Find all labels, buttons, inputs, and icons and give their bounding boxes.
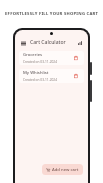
button[interactable]: My Whishlist	[19, 69, 84, 83]
button[interactable]: Delete cart	[72, 54, 80, 62]
button[interactable]: Statistics	[76, 39, 84, 47]
button[interactable]: Delete cart	[72, 72, 80, 80]
button[interactable]: Groceries	[19, 51, 84, 65]
staticText: EFFORTLESSLY FILL YOUR SHOPING CART	[5, 11, 99, 17]
staticText: My Whishlist	[23, 70, 49, 76]
button[interactable]: Menu	[19, 39, 27, 47]
button[interactable]: Add new cart	[42, 164, 83, 175]
staticText: Groceries	[23, 52, 43, 58]
staticText: Add new cart	[52, 167, 79, 173]
staticText: Created on 03-11-2024	[23, 78, 57, 82]
staticText: Cart Calculator	[30, 39, 66, 46]
staticText: Created on 03-11-2024	[23, 60, 57, 64]
